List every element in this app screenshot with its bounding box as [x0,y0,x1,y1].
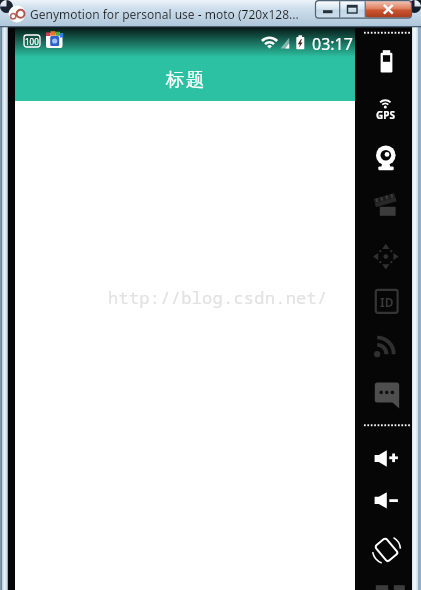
button[interactable] [339,1,365,18]
button[interactable] [368,448,404,470]
button[interactable] [368,46,404,76]
staticText: Genymotion for personal use - moto (720x… [30,6,299,22]
staticText: 100 [25,36,39,47]
button[interactable] [365,1,411,18]
button[interactable] [368,535,404,565]
staticText: GPS [376,108,395,119]
button[interactable] [368,287,404,315]
button[interactable] [368,142,404,172]
button[interactable] [368,331,404,359]
button[interactable] [368,490,404,512]
button[interactable] [316,1,339,18]
button[interactable] [368,241,404,271]
button[interactable] [368,379,404,409]
staticText: http://blog.csdn.net/ [108,286,328,308]
button[interactable] [368,191,404,219]
button[interactable] [368,94,404,122]
staticText: 标题 [165,68,205,91]
staticText: ID [380,294,394,310]
staticText: 03:17 [312,33,353,53]
